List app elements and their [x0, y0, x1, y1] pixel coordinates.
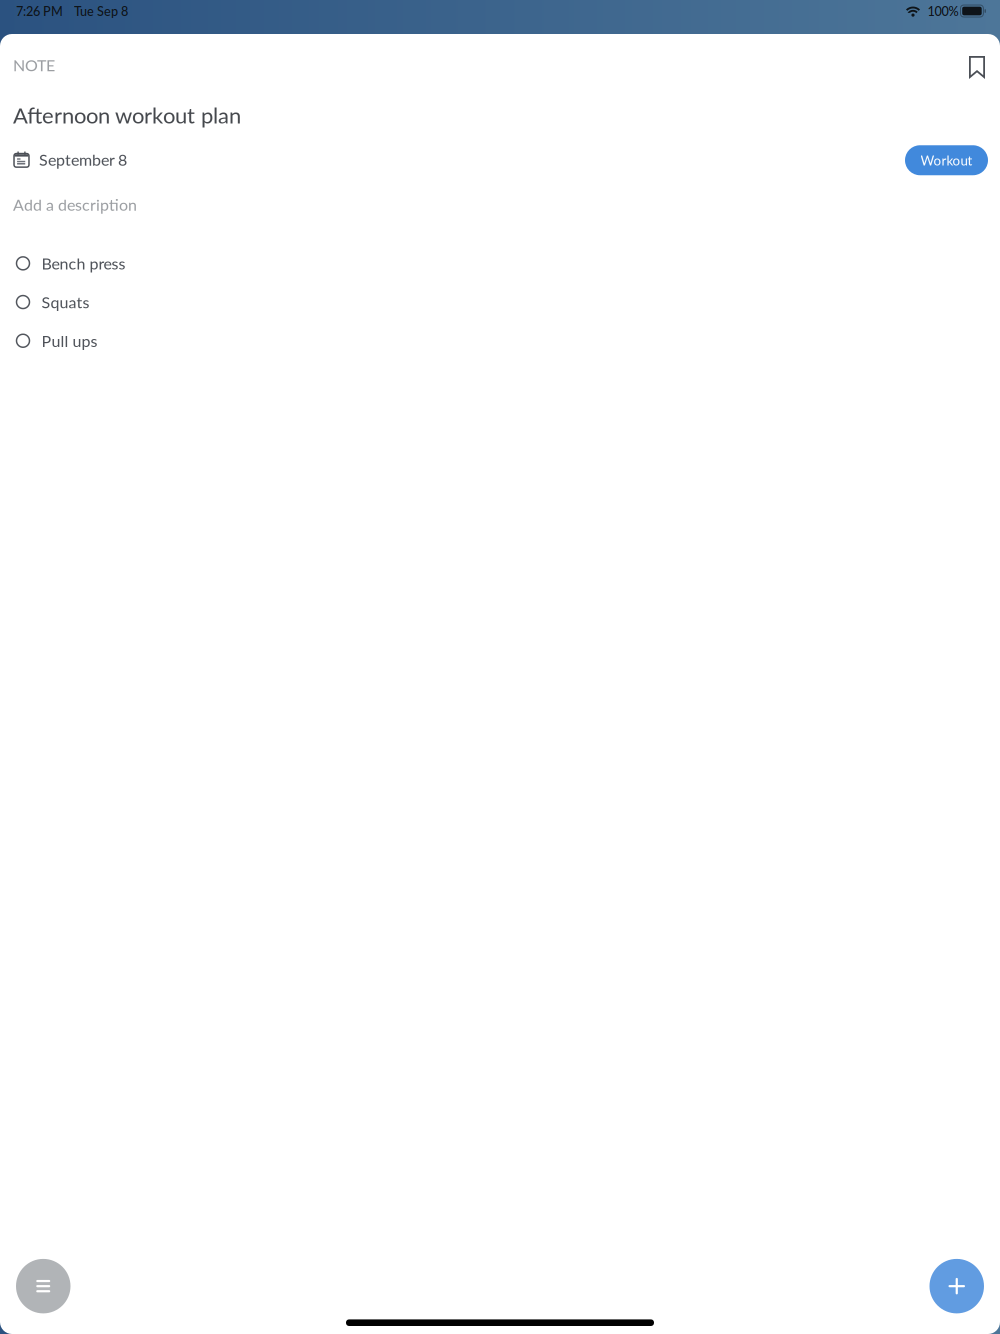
staticText: 7:26 PM	[16, 3, 63, 19]
staticText: Bench press	[41, 254, 125, 273]
staticText: September 8	[39, 150, 127, 169]
button[interactable]: Menu	[16, 1259, 70, 1313]
button[interactable]: Pull ups	[0, 321, 1000, 360]
staticText: Workout	[920, 152, 972, 168]
button[interactable]: Add a description	[0, 195, 1000, 214]
staticText: Tue Sep 8	[74, 3, 128, 19]
button[interactable]: September 8	[0, 146, 127, 173]
staticText: Add a description	[13, 195, 137, 214]
button[interactable]: Bench press	[0, 244, 1000, 283]
staticText: Squats	[41, 292, 89, 312]
staticText: Pull ups	[41, 331, 97, 350]
staticText: NOTE	[13, 55, 55, 75]
button[interactable]: Squats	[0, 283, 1000, 321]
button[interactable]: Add note	[929, 1259, 984, 1313]
staticText: Afternoon workout plan	[13, 102, 241, 128]
staticText: 100%	[927, 3, 958, 19]
button[interactable]: Bookmark	[953, 37, 999, 93]
button[interactable]: Workout	[905, 145, 988, 175]
